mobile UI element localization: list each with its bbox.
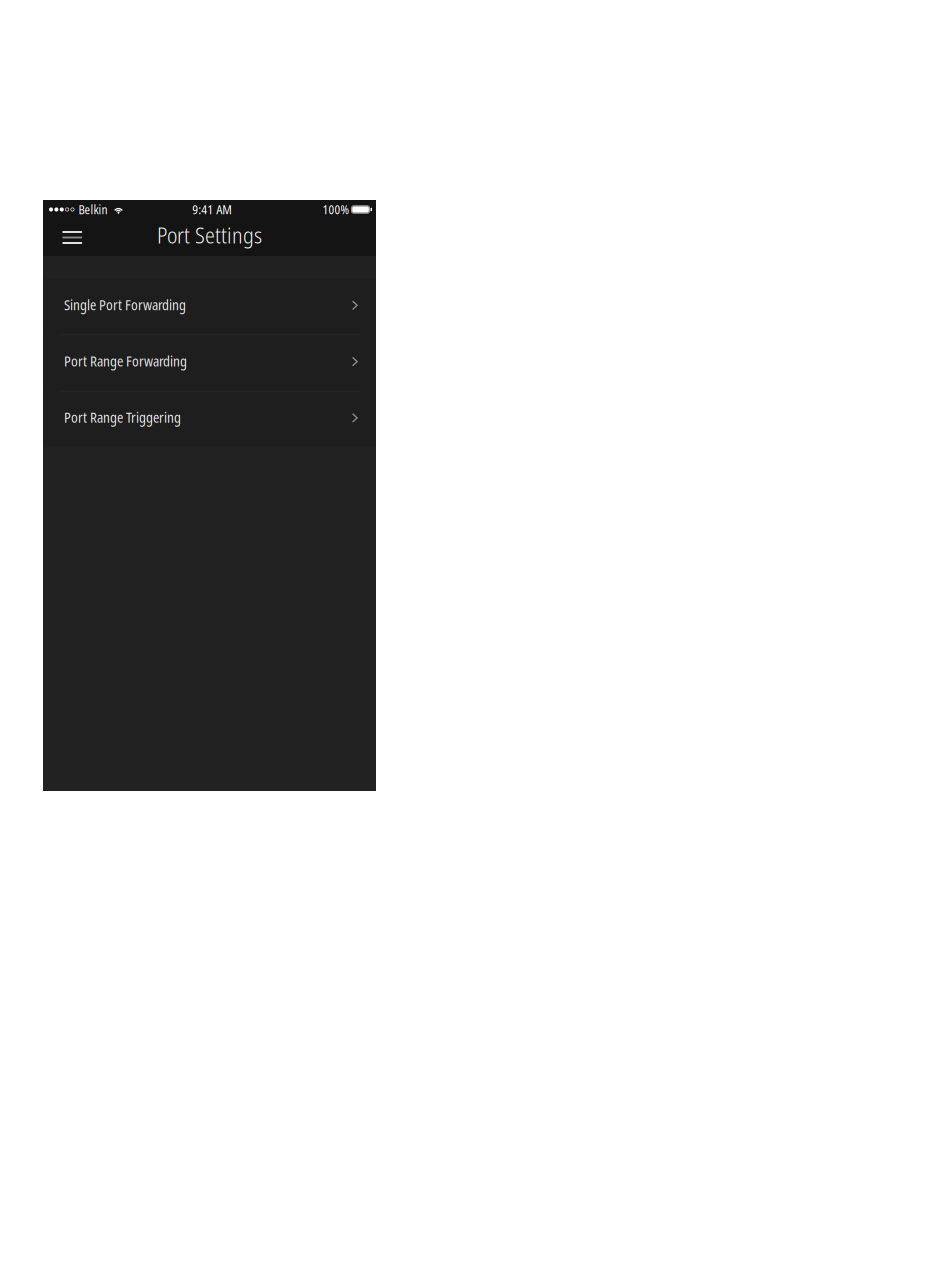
staticText: 100%	[323, 201, 350, 218]
staticText: Belkin	[78, 201, 107, 218]
button[interactable]: Single Port Forwarding	[43, 279, 376, 335]
staticText: 9:41 AM	[192, 201, 232, 218]
button[interactable]: Port Range Forwarding	[43, 335, 376, 392]
staticText: Port Range Triggering	[64, 408, 181, 427]
staticText: Port Settings	[157, 220, 262, 250]
button[interactable]: Port Range Triggering	[43, 392, 376, 447]
staticText: Port Range Forwarding	[64, 352, 187, 370]
staticText: Single Port Forwarding	[64, 295, 186, 314]
button[interactable]: Menu	[43, 219, 101, 256]
